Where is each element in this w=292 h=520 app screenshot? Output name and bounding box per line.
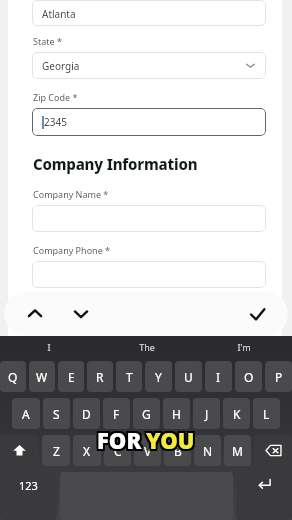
staticText: YOU bbox=[146, 425, 195, 455]
staticText: Company Name * bbox=[33, 188, 109, 200]
staticText: YOU bbox=[146, 423, 195, 453]
button[interactable]: Next field bbox=[64, 297, 98, 331]
staticText: A bbox=[22, 406, 30, 422]
button[interactable]: P bbox=[265, 361, 292, 392]
staticText: 2345 bbox=[44, 115, 67, 129]
staticText: YOU bbox=[148, 423, 197, 453]
staticText: The bbox=[139, 341, 155, 353]
button[interactable]: Y bbox=[145, 361, 172, 392]
staticText: W bbox=[36, 369, 48, 385]
staticText: FOR bbox=[95, 423, 140, 453]
staticText: YOU bbox=[144, 423, 193, 453]
staticText: P bbox=[275, 369, 283, 385]
button[interactable]: I bbox=[0, 336, 98, 358]
staticText: L bbox=[263, 406, 270, 422]
button[interactable]: Z bbox=[42, 435, 70, 466]
staticText: I bbox=[216, 369, 221, 385]
staticText: Company Address * bbox=[33, 300, 117, 312]
button[interactable]: Shift bbox=[0, 435, 39, 466]
button[interactable]: C bbox=[104, 435, 131, 466]
button[interactable]: Q bbox=[0, 361, 26, 392]
staticText: Z bbox=[53, 443, 60, 459]
staticText: R bbox=[96, 369, 104, 385]
button[interactable]: K bbox=[223, 398, 250, 429]
staticText: Atlanta bbox=[42, 7, 76, 21]
button[interactable]: B bbox=[164, 435, 191, 466]
button[interactable]: V bbox=[134, 435, 161, 466]
staticText: X bbox=[83, 443, 91, 459]
staticText: D bbox=[82, 406, 91, 422]
button[interactable]: Done bbox=[240, 297, 274, 331]
button[interactable]: 123 bbox=[0, 472, 57, 520]
button[interactable]: 2345 bbox=[32, 108, 266, 136]
staticText: E bbox=[68, 369, 75, 385]
staticText: I bbox=[47, 341, 51, 353]
staticText: G bbox=[142, 406, 151, 422]
button[interactable]: X bbox=[73, 435, 101, 466]
button[interactable]: Previous field bbox=[18, 297, 52, 331]
staticText: K bbox=[233, 406, 241, 422]
staticText: Y bbox=[155, 369, 162, 385]
staticText: Q bbox=[8, 369, 18, 385]
staticText: U bbox=[184, 369, 193, 385]
button[interactable]: F bbox=[103, 398, 130, 429]
button[interactable]: L bbox=[253, 398, 280, 429]
button[interactable]: The bbox=[98, 336, 195, 358]
staticText: Company Phone * bbox=[33, 244, 111, 256]
button[interactable]: D bbox=[73, 398, 100, 429]
button[interactable]: E bbox=[58, 361, 84, 392]
button[interactable]: O bbox=[235, 361, 262, 392]
staticText: FOR bbox=[95, 425, 140, 455]
staticText: O bbox=[244, 369, 254, 385]
staticText: YOU bbox=[144, 427, 193, 457]
staticText: 123 bbox=[19, 478, 38, 493]
staticText: YOU bbox=[148, 427, 197, 457]
button[interactable]: H bbox=[163, 398, 190, 429]
staticText: Georgia bbox=[42, 59, 80, 73]
staticText: T bbox=[126, 369, 133, 385]
button[interactable]: Atlanta bbox=[32, 0, 266, 26]
staticText: YOU bbox=[144, 425, 193, 455]
button[interactable]: A bbox=[12, 398, 40, 429]
staticText: FOR bbox=[97, 425, 142, 455]
staticText: YOU bbox=[146, 427, 195, 457]
staticText: M bbox=[232, 443, 243, 459]
button[interactable]: M bbox=[224, 435, 251, 466]
staticText: J bbox=[205, 406, 209, 422]
staticText: Zip Code * bbox=[33, 91, 78, 103]
staticText: I'm bbox=[237, 341, 251, 353]
staticText: S bbox=[53, 406, 60, 422]
button[interactable]: U bbox=[175, 361, 202, 392]
staticText: H bbox=[172, 406, 181, 422]
button[interactable]: I'm bbox=[195, 336, 292, 358]
staticText: FOR bbox=[99, 423, 144, 453]
button[interactable]: J bbox=[193, 398, 220, 429]
button[interactable]: W bbox=[29, 361, 55, 392]
staticText: F bbox=[113, 406, 120, 422]
button[interactable]: R bbox=[87, 361, 113, 392]
staticText: FOR bbox=[95, 427, 140, 457]
staticText: State * bbox=[33, 35, 62, 47]
button[interactable]: G bbox=[133, 398, 160, 429]
button[interactable] bbox=[32, 261, 266, 288]
staticText: C bbox=[114, 443, 122, 459]
button[interactable]: S bbox=[43, 398, 70, 429]
staticText: Company Information bbox=[33, 154, 198, 174]
button[interactable]: Enter bbox=[236, 472, 292, 520]
button[interactable]: I bbox=[205, 361, 232, 392]
button[interactable]: T bbox=[116, 361, 142, 392]
button[interactable] bbox=[32, 205, 266, 232]
staticText: FOR bbox=[99, 425, 144, 455]
button[interactable]: Backspace bbox=[254, 435, 292, 466]
staticText: B bbox=[174, 443, 182, 459]
staticText: FOR bbox=[97, 427, 142, 457]
staticText: N bbox=[203, 443, 213, 459]
staticText: YOU bbox=[148, 425, 197, 455]
button[interactable]: Georgia bbox=[32, 52, 266, 79]
button[interactable]: N bbox=[194, 435, 221, 466]
staticText: V bbox=[144, 443, 152, 459]
staticText: FOR bbox=[97, 423, 142, 453]
staticText: FOR bbox=[99, 427, 144, 457]
